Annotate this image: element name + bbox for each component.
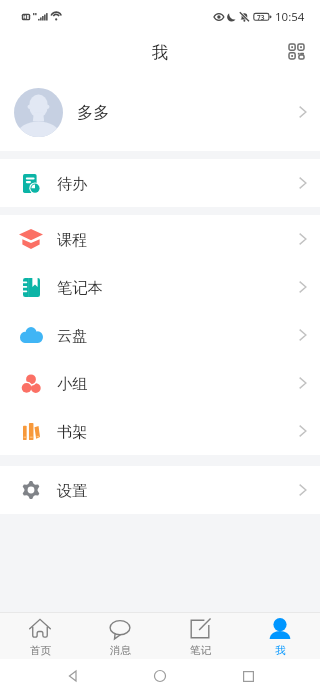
staticText: 73: [257, 13, 265, 22]
button[interactable]: Home: [145, 661, 175, 691]
staticText: 10:54: [275, 9, 305, 25]
staticText: 课程: [57, 230, 88, 249]
staticText: 设置: [57, 481, 88, 500]
button[interactable]: 书架: [0, 407, 320, 455]
button[interactable]: Back: [58, 661, 88, 691]
button[interactable]: 云盘: [0, 311, 320, 359]
staticText: 云盘: [57, 326, 88, 345]
button[interactable]: 我: [240, 613, 320, 659]
button[interactable]: 课程: [0, 215, 320, 263]
staticText: 小组: [57, 374, 88, 393]
staticText: 笔记: [190, 644, 211, 657]
button[interactable]: 笔记本: [0, 263, 320, 311]
button[interactable]: 消息: [80, 613, 160, 659]
staticText: 待办: [57, 174, 88, 193]
button[interactable]: 待办: [0, 159, 320, 207]
staticText: 消息: [110, 644, 131, 657]
button[interactable]: 首页: [0, 613, 80, 659]
button[interactable]: Recent apps: [233, 661, 263, 691]
staticText: 书架: [57, 422, 88, 441]
button[interactable]: 多多: [0, 73, 320, 151]
button[interactable]: 设置: [0, 466, 320, 514]
button[interactable]: 笔记: [160, 613, 240, 659]
button[interactable]: Scan QR code: [279, 34, 313, 68]
staticText: 笔记本: [57, 278, 103, 297]
staticText: 多多: [77, 102, 110, 122]
staticText: 我: [275, 644, 286, 657]
staticText: 我: [152, 42, 169, 63]
staticText: 首页: [30, 644, 51, 657]
button[interactable]: 小组: [0, 359, 320, 407]
